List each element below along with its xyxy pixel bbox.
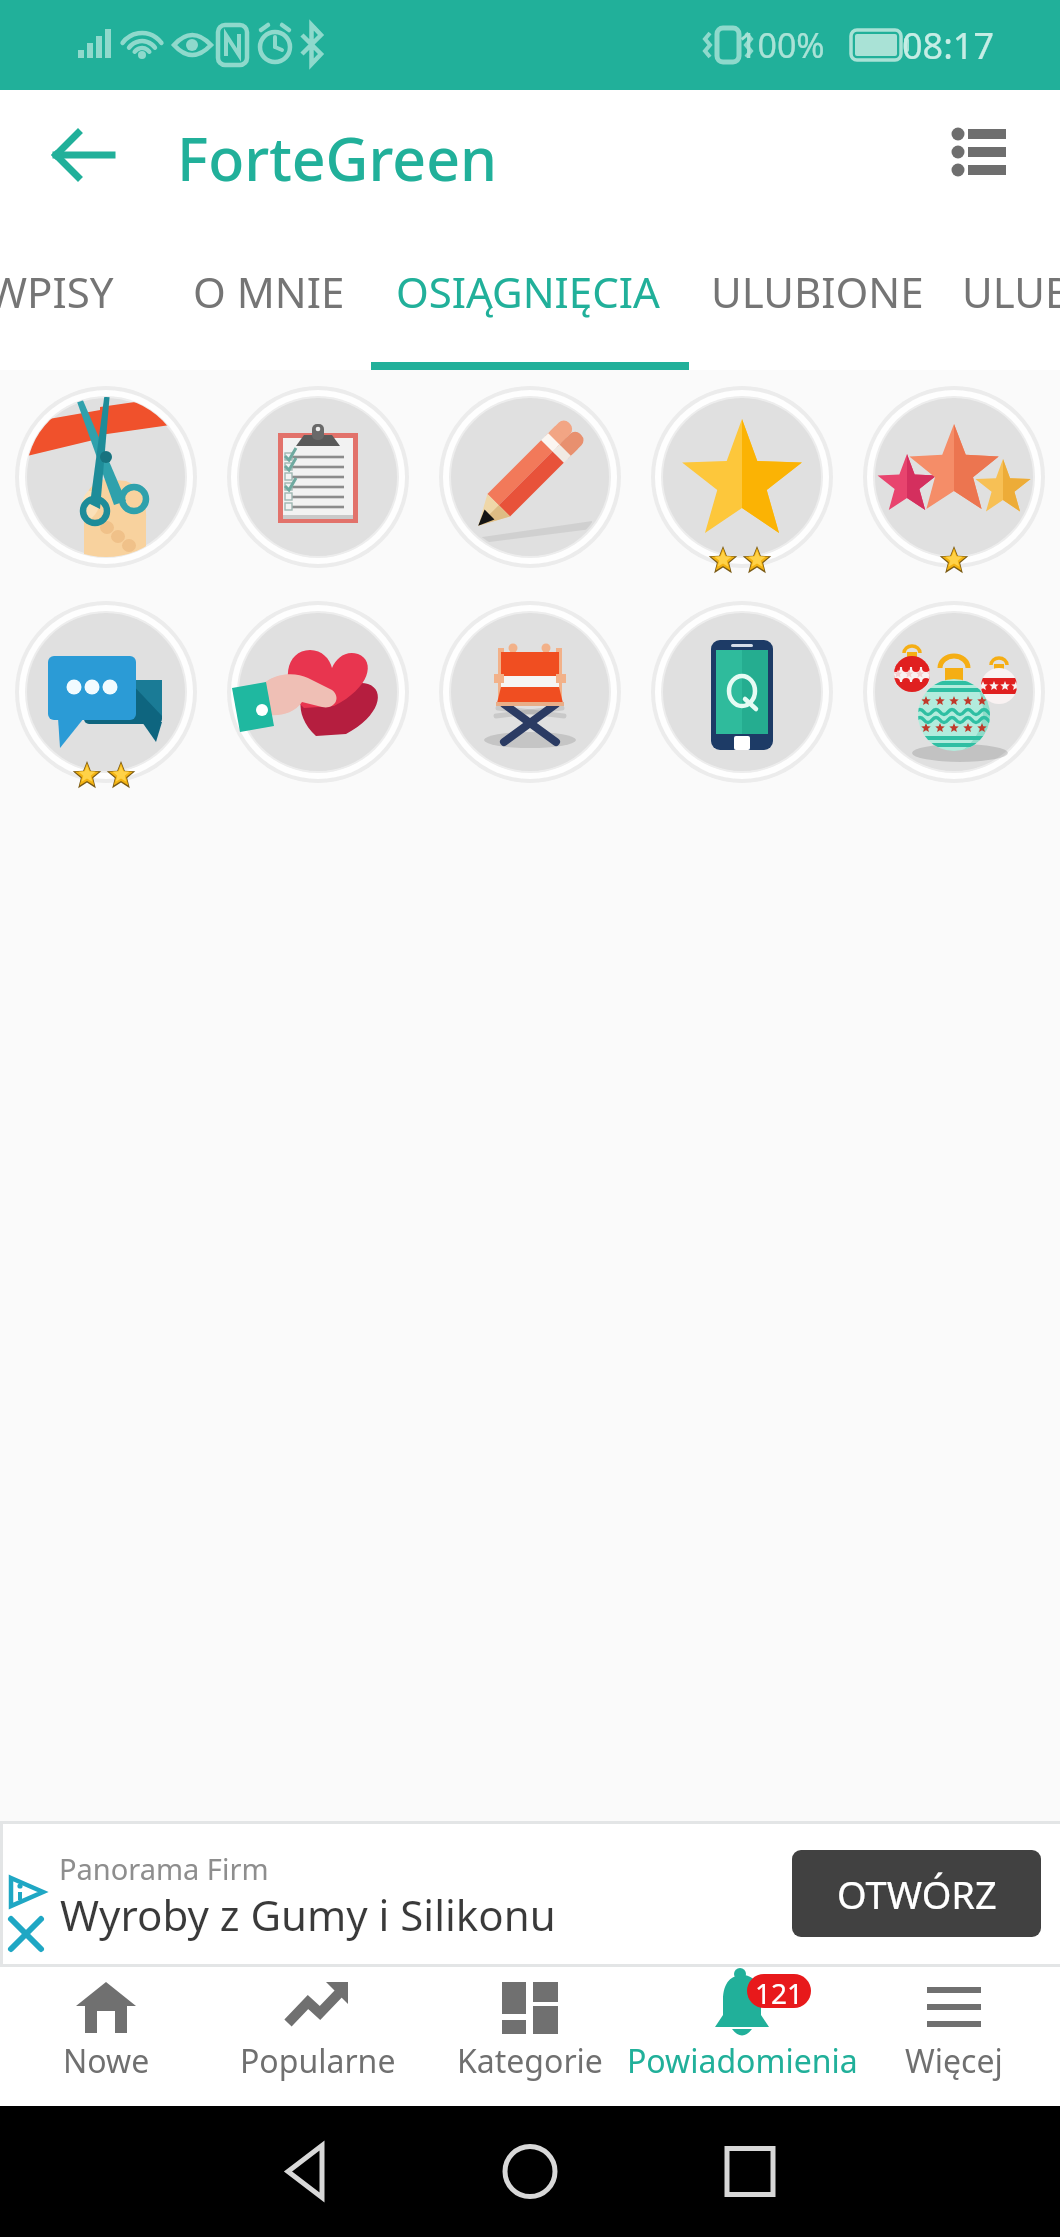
staticText: 100% bbox=[738, 22, 825, 68]
button[interactable]: Back bbox=[28, 100, 138, 210]
staticText: Wyroby z Gumy i Silikonu bbox=[60, 1886, 556, 1943]
staticText: O MNIE bbox=[193, 263, 345, 320]
button[interactable]: Ad info bbox=[3, 1824, 1060, 1964]
staticText: Nowe bbox=[63, 2039, 150, 2083]
staticText: ForteGreen bbox=[177, 118, 498, 198]
button[interactable]: ULUBIONE bbox=[711, 220, 924, 370]
staticText: Panorama Firm bbox=[59, 1849, 269, 1888]
button[interactable]: OTWÓRZ bbox=[792, 1850, 1041, 1937]
staticText: 121 bbox=[755, 1974, 804, 2008]
other: Ad info bbox=[6, 1876, 50, 1958]
button[interactable]: 121 bbox=[636, 1967, 848, 2106]
button[interactable]: O MNIE bbox=[193, 220, 345, 370]
button[interactable]: View list bbox=[924, 100, 1034, 210]
staticText: Powiadomienia bbox=[627, 2039, 858, 2083]
button[interactable]: Popularne bbox=[212, 1967, 424, 2106]
staticText: ULUBIONE bbox=[962, 263, 1060, 320]
staticText: Kategorie bbox=[457, 2039, 603, 2083]
staticText: Więcej bbox=[905, 2039, 1003, 2083]
staticText: OTWÓRZ bbox=[837, 1868, 997, 1920]
button[interactable]: WPISY bbox=[0, 220, 114, 370]
button[interactable]: OSIĄGNIĘCIA bbox=[396, 220, 660, 370]
button[interactable]: ULUBIONE bbox=[962, 220, 1060, 370]
staticText: 08:17 bbox=[902, 21, 995, 70]
staticText: WPISY bbox=[0, 263, 114, 320]
staticText: OSIĄGNIĘCIA bbox=[396, 263, 660, 320]
button[interactable]: Nowe bbox=[0, 1967, 212, 2106]
button[interactable]: Kategorie bbox=[424, 1967, 636, 2106]
button[interactable]: Więcej bbox=[848, 1967, 1060, 2106]
staticText: ULUBIONE bbox=[711, 263, 924, 320]
staticText: Popularne bbox=[240, 2039, 396, 2083]
